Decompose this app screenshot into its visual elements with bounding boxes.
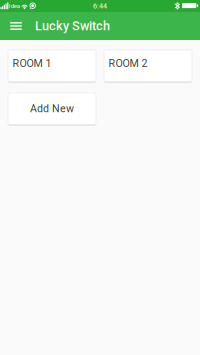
staticText: Idea xyxy=(9,2,20,10)
staticText: Add New xyxy=(30,102,74,115)
staticText: 6:44 xyxy=(93,2,107,10)
button[interactable]: Add New xyxy=(8,93,96,124)
staticText: ROOM 2 xyxy=(109,57,148,69)
staticText: Lucky Switch xyxy=(35,19,110,33)
button[interactable]: ROOM 1 xyxy=(8,50,96,81)
button[interactable]: Open navigation menu xyxy=(5,12,27,40)
button[interactable]: ROOM 2 xyxy=(104,50,192,81)
staticText: ROOM 1 xyxy=(13,57,52,69)
